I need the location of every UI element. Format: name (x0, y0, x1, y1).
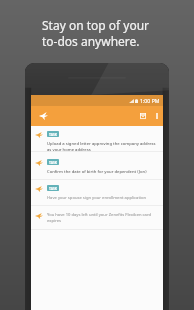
button[interactable]: You have 10 days left until your Zenefit… (31, 206, 163, 230)
staticText: TASK (49, 160, 57, 164)
button[interactable]: TASK (31, 125, 163, 152)
staticText: You have 10 days left until your Zenefit… (47, 212, 152, 218)
button[interactable]: TASK (31, 152, 163, 180)
staticText: to-dos anywhere. (42, 33, 140, 49)
button[interactable]: Archive (134, 106, 151, 126)
staticText: Confirm the date of birth for your depen… (47, 169, 147, 175)
staticText: Stay on top of your (42, 17, 150, 33)
staticText: Have your spouse sign your enrollment ap… (47, 195, 147, 201)
staticText: 1:00 PM (140, 97, 160, 104)
button[interactable]: TASK (31, 180, 163, 206)
button[interactable]: More options (151, 106, 163, 126)
staticText: TASK (49, 132, 57, 136)
staticText: expires (47, 218, 62, 224)
button[interactable]: Back (31, 106, 56, 126)
staticText: TASK (49, 186, 57, 190)
staticText: Upload a signed letter approving the com… (47, 141, 156, 147)
staticText: as your home address (47, 147, 91, 151)
